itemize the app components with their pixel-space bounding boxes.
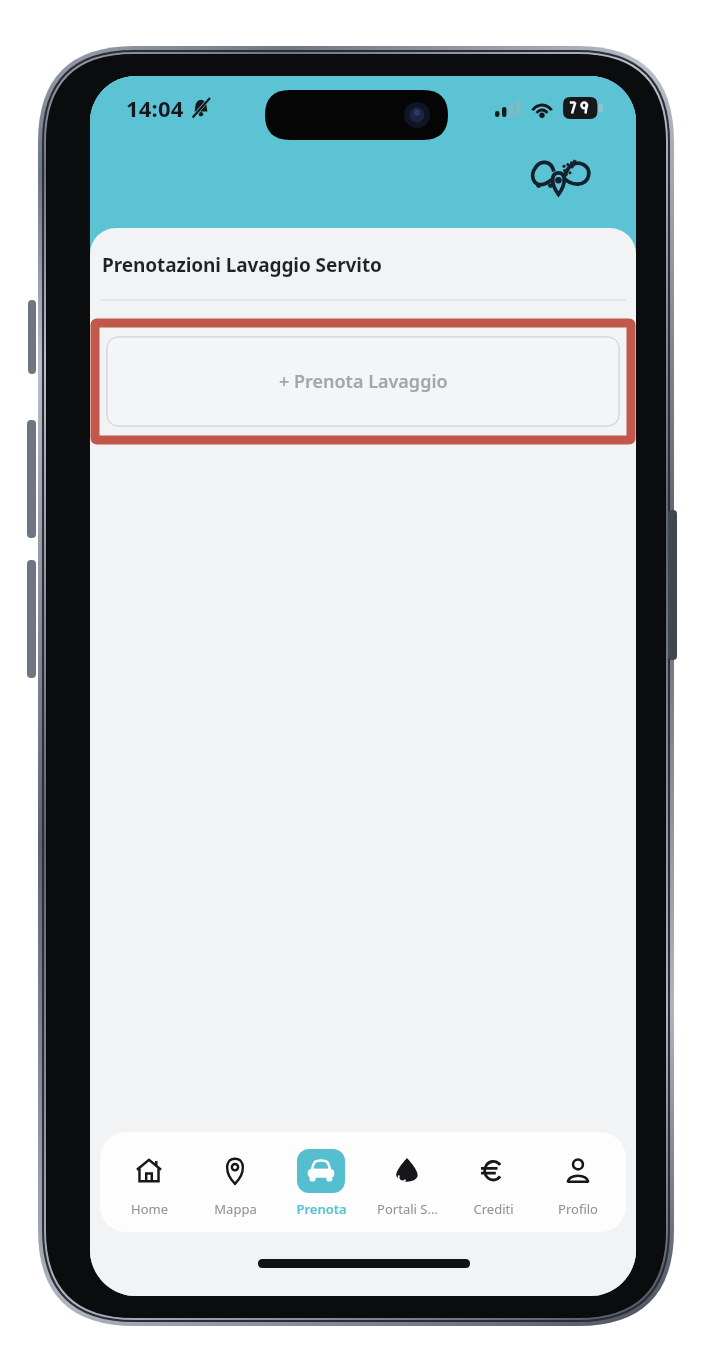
staticText: Mappa	[214, 1200, 257, 1218]
staticText: Portali S...	[377, 1200, 438, 1218]
staticText: Prenota	[296, 1200, 347, 1218]
staticText: 14:04	[126, 93, 184, 123]
button[interactable]: Profilo	[536, 1139, 620, 1226]
button[interactable]: + Prenota Lavaggio	[106, 336, 620, 427]
staticText: + Prenota Lavaggio	[279, 369, 448, 394]
staticText: Prenotazioni Lavaggio Servito	[102, 252, 382, 278]
staticText: Crediti	[473, 1200, 514, 1218]
button[interactable]: Home	[106, 1139, 192, 1226]
button[interactable]: Mappa	[192, 1139, 278, 1226]
button[interactable]: Crediti	[450, 1139, 536, 1226]
button[interactable]: Logo Lavaggio	[527, 150, 593, 200]
staticText: Profilo	[558, 1200, 598, 1218]
staticText: Home	[131, 1200, 168, 1218]
button[interactable]: Prenota	[278, 1139, 364, 1226]
button[interactable]: Portali S...	[364, 1139, 450, 1226]
